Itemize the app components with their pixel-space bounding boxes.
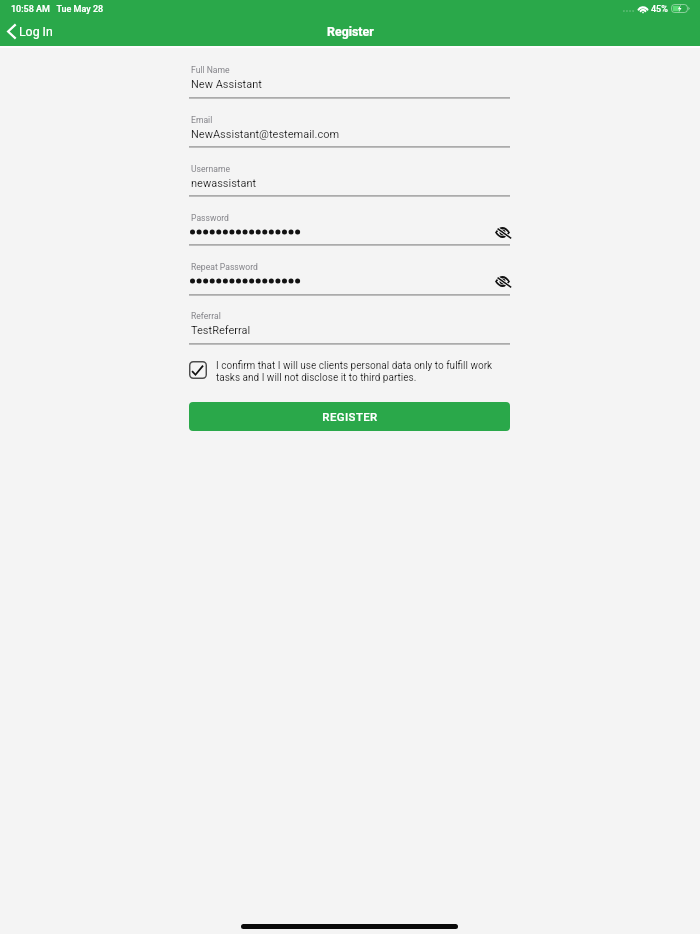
button[interactable]: Confirm data usage [189,361,207,379]
staticText: Log In [19,25,53,39]
staticText: Email [191,115,213,125]
staticText: NewAssistant@testemail.com [191,128,340,141]
staticText: Referral [191,311,221,321]
staticText: 10:58 AM Tue May 28 [11,4,104,15]
staticText: 45% [651,4,668,15]
staticText: REGISTER [322,410,378,423]
button[interactable]: Log In [2,21,61,42]
button[interactable]: REGISTER [189,402,510,431]
staticText: newassistant [191,177,257,190]
staticText: New Assistant [191,78,262,91]
staticText: Username [191,164,230,174]
button[interactable]: Show password [495,227,510,238]
staticText: Password [191,213,229,223]
staticText: Full Name [191,65,230,75]
staticText: Repeat Password [191,262,258,272]
staticText: Register [327,24,374,39]
staticText: I confirm that I will use clients person… [216,360,502,384]
staticText: TestReferral [191,324,251,337]
button[interactable]: Show password [495,276,510,287]
